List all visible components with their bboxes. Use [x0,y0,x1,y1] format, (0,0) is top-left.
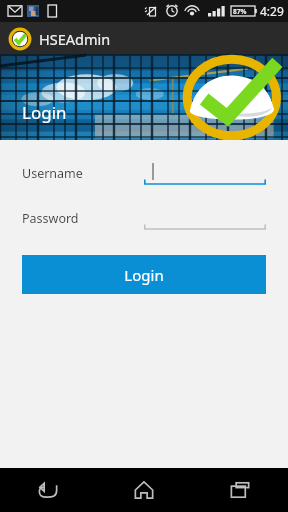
staticText: HSEAdmin [39,29,111,49]
button[interactable]: Home [96,468,192,512]
staticText: 4:29 [260,3,284,19]
staticText: Login [124,265,164,285]
button[interactable]: Username [0,160,288,186]
staticText: Username [22,165,83,182]
button[interactable]: Recent apps [192,468,288,512]
staticText: 87% [233,7,247,16]
staticText: Login [22,101,67,124]
button[interactable]: Password [0,205,288,231]
button[interactable]: Back [0,468,96,512]
button[interactable]: Login [22,255,266,294]
staticText: Password [22,210,79,227]
